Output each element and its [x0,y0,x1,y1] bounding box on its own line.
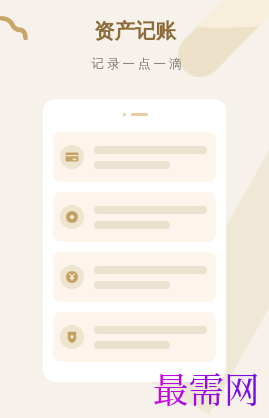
button[interactable] [53,132,216,182]
button[interactable] [53,312,216,362]
staticText: 资产记账 [94,18,176,44]
staticText: 最需网 [153,362,260,413]
staticText: 记录一点一滴 [90,56,183,72]
button[interactable] [53,252,216,302]
button[interactable] [53,192,216,242]
